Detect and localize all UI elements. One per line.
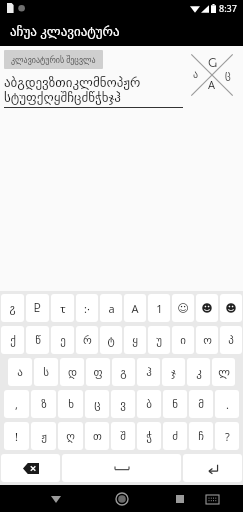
- button[interactable]: ო: [196, 326, 218, 354]
- button[interactable]: Space: [62, 454, 181, 482]
- button[interactable]: რ: [76, 326, 98, 354]
- staticText: ჷ: [9, 302, 16, 315]
- button[interactable]: τ: [51, 294, 74, 322]
- staticText: A: [208, 77, 216, 92]
- button[interactable]: ლ: [212, 358, 235, 386]
- staticText: ღ: [66, 430, 75, 443]
- button[interactable]: პ: [220, 326, 242, 354]
- staticText: 8:37: [219, 2, 237, 14]
- staticText: .: [226, 397, 229, 412]
- button[interactable]: ნ: [163, 390, 187, 418]
- staticText: სტუფქღყშჩცძწჭხჯჰ: [4, 90, 121, 105]
- button[interactable]: :·: [76, 294, 98, 322]
- button[interactable]: მ: [189, 390, 213, 418]
- button[interactable]: Backspace: [1, 454, 60, 482]
- staticText: a: [108, 301, 115, 316]
- button[interactable]: ზ: [31, 390, 56, 418]
- button[interactable]: კ: [187, 358, 210, 386]
- staticText: !: [15, 429, 18, 444]
- button[interactable]: შ: [111, 422, 135, 450]
- button[interactable]: ☻: [220, 294, 242, 322]
- staticText: ვ: [120, 398, 126, 411]
- button[interactable]: !: [4, 422, 29, 450]
- staticText: ხ: [68, 398, 74, 411]
- button[interactable]: კლავიატურის შეცვლა: [4, 50, 103, 69]
- staticText: ა: [193, 69, 199, 81]
- button[interactable]: Ⴒ: [26, 294, 49, 322]
- button[interactable]: თ: [85, 422, 109, 450]
- staticText: პ: [228, 334, 234, 347]
- staticText: ფ: [93, 366, 103, 379]
- staticText: ☻: [201, 302, 213, 315]
- staticText: ჯ: [171, 366, 176, 379]
- staticText: ჟ: [41, 430, 47, 443]
- staticText: კ: [196, 366, 202, 379]
- staticText: უ: [156, 334, 162, 347]
- button[interactable]: ი: [172, 326, 194, 354]
- button[interactable]: ☻: [196, 294, 218, 322]
- button[interactable]: ფ: [86, 358, 110, 386]
- staticText: ლ: [218, 366, 230, 379]
- button[interactable]: Home: [110, 487, 134, 511]
- staticText: ,: [15, 397, 18, 412]
- staticText: ☻: [225, 302, 237, 315]
- button[interactable]: ?: [215, 422, 239, 450]
- staticText: τ: [60, 301, 66, 316]
- button[interactable]: ხ: [58, 390, 83, 418]
- staticText: ბ: [146, 398, 152, 411]
- button[interactable]: ე: [51, 326, 74, 354]
- button[interactable]: გ: [112, 358, 135, 386]
- button[interactable]: ჯ: [162, 358, 185, 386]
- button[interactable]: ღ: [58, 422, 83, 450]
- button[interactable]: ჰ: [137, 358, 160, 386]
- staticText: ა: [17, 366, 23, 379]
- button[interactable]: ა: [8, 358, 32, 386]
- staticText: ო: [203, 334, 212, 347]
- button[interactable]: Switch keyboard: [201, 488, 223, 510]
- button[interactable]: უ: [148, 326, 170, 354]
- button[interactable]: ,: [4, 390, 29, 418]
- staticText: ქ: [10, 334, 16, 347]
- button[interactable]: ჭ: [137, 422, 161, 450]
- button[interactable]: ჩ: [189, 422, 213, 450]
- staticText: A: [131, 301, 139, 316]
- staticText: მ: [198, 398, 204, 411]
- button[interactable]: ძ: [163, 422, 187, 450]
- button[interactable]: ვ: [111, 390, 135, 418]
- staticText: დ: [68, 366, 77, 379]
- button[interactable]: Enter: [183, 454, 242, 482]
- staticText: აჩუა კლავიატურა: [10, 22, 120, 40]
- staticText: Ⴒ: [34, 302, 41, 315]
- button[interactable]: a: [100, 294, 122, 322]
- button[interactable]: Back: [44, 487, 68, 511]
- staticText: ყ: [132, 334, 138, 347]
- button[interactable]: ბ: [137, 390, 161, 418]
- button[interactable]: .: [215, 390, 239, 418]
- button[interactable]: ც: [85, 390, 109, 418]
- staticText: Ⴚ: [208, 57, 217, 70]
- button[interactable]: დ: [60, 358, 84, 386]
- staticText: ჩ: [198, 430, 204, 443]
- staticText: შ: [120, 430, 126, 443]
- staticText: რ: [83, 334, 92, 347]
- button[interactable]: ჟ: [31, 422, 56, 450]
- staticText: გ: [120, 366, 127, 379]
- staticText: 1: [156, 301, 163, 316]
- button[interactable]: წ: [26, 326, 49, 354]
- staticText: ძ: [172, 430, 178, 443]
- button[interactable]: ს: [34, 358, 58, 386]
- button[interactable]: Recent apps: [169, 488, 191, 510]
- button[interactable]: ☺: [172, 294, 194, 322]
- button[interactable]: A: [124, 294, 146, 322]
- staticText: ზ: [41, 398, 47, 411]
- staticText: ჰ: [146, 366, 152, 379]
- button[interactable]: ქ: [1, 326, 24, 354]
- button[interactable]: ყ: [124, 326, 146, 354]
- button[interactable]: ჷ: [1, 294, 24, 322]
- staticText: თ: [93, 430, 102, 443]
- staticText: ც: [94, 398, 101, 411]
- button[interactable]: ტ: [100, 326, 122, 354]
- staticText: წ: [35, 334, 41, 347]
- button[interactable]: 1: [148, 294, 170, 322]
- staticText: ჭ: [146, 430, 152, 443]
